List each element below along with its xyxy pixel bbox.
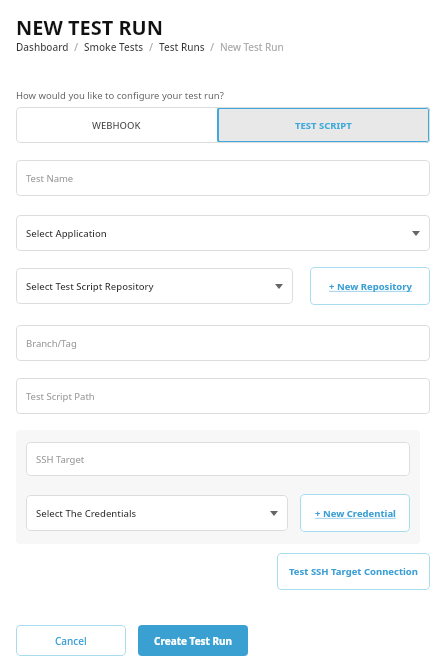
button[interactable]: Select Test Script Repository bbox=[16, 268, 293, 304]
button[interactable]: TEST SCRIPT bbox=[217, 107, 430, 143]
button[interactable]: Smoke Tests bbox=[84, 40, 144, 54]
staticText: WEBHOOK bbox=[92, 119, 141, 132]
staticText: Test SSH Target Connection bbox=[289, 565, 418, 578]
staticText: / bbox=[205, 40, 220, 54]
button[interactable]: Select Application bbox=[16, 215, 430, 251]
button[interactable]: Cancel bbox=[16, 625, 126, 656]
staticText: Select Test Script Repository bbox=[26, 280, 154, 293]
button[interactable]: Test Name bbox=[16, 160, 430, 196]
button[interactable]: Select The Credentials bbox=[26, 495, 288, 531]
button[interactable]: + New Repository bbox=[310, 267, 430, 305]
staticText: + New Repository bbox=[329, 280, 412, 293]
button[interactable]: Test Runs bbox=[159, 40, 205, 54]
staticText: / bbox=[69, 40, 84, 54]
button[interactable]: + New Credential bbox=[300, 494, 410, 532]
staticText: Create Test Run bbox=[154, 634, 233, 648]
staticText: Test Name bbox=[26, 172, 74, 185]
staticText: + New Credential bbox=[315, 507, 396, 520]
button[interactable]: Branch/Tag bbox=[16, 325, 430, 361]
staticText: / bbox=[144, 40, 159, 54]
staticText: Select Application bbox=[26, 227, 107, 240]
staticText: Cancel bbox=[55, 634, 87, 648]
button[interactable]: Dashboard bbox=[16, 40, 69, 54]
staticText: SSH Target bbox=[36, 453, 85, 466]
staticText: Select The Credentials bbox=[36, 507, 137, 520]
button[interactable]: SSH Target bbox=[26, 442, 410, 476]
button[interactable]: Test SSH Target Connection bbox=[277, 553, 430, 590]
staticText: Test Script Path bbox=[26, 390, 95, 403]
button[interactable]: Test Script Path bbox=[16, 378, 430, 414]
staticText: New Test Run bbox=[220, 40, 284, 54]
staticText: NEW TEST RUN bbox=[16, 14, 163, 41]
button[interactable]: WEBHOOK bbox=[16, 107, 217, 143]
staticText: How would you like to configure your tes… bbox=[16, 89, 224, 102]
button[interactable]: Create Test Run bbox=[138, 625, 248, 656]
staticText: TEST SCRIPT bbox=[295, 119, 352, 132]
staticText: Branch/Tag bbox=[26, 337, 77, 350]
